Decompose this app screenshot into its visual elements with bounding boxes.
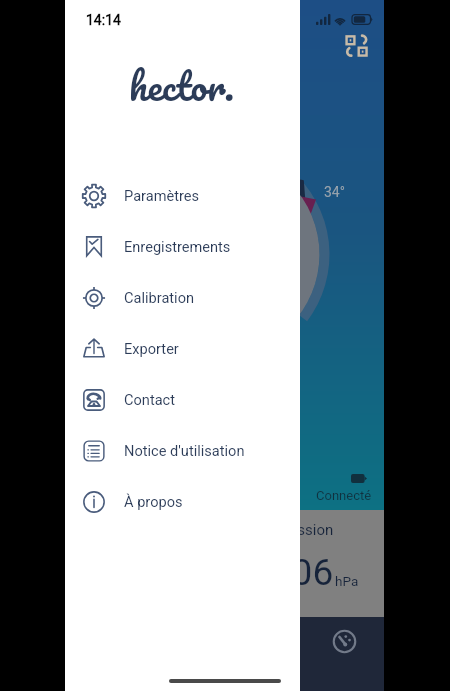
staticText: Signal: [166, 488, 202, 503]
staticText: Calibration: [124, 289, 195, 306]
button[interactable]: Paramètres: [65, 170, 300, 221]
staticText: Batterie: [82, 488, 128, 503]
button[interactable]: Notice d'utilisation: [65, 425, 300, 476]
staticText: Enregistrements: [124, 238, 231, 255]
staticText: Paramètres: [124, 187, 200, 204]
staticText: 1006: [250, 551, 334, 594]
button[interactable]: Historique: [144, 617, 224, 691]
button[interactable]: Alertes: [224, 617, 304, 691]
staticText: Exporter: [124, 340, 179, 357]
button[interactable]: Synchroniser: [344, 33, 371, 60]
staticText: Notice d'utilisation: [124, 442, 245, 459]
button[interactable]: Enregistrements: [65, 221, 300, 272]
staticText: 14:14: [86, 12, 121, 28]
staticText: Contact: [124, 391, 176, 408]
button[interactable]: Mesures: [304, 617, 384, 691]
staticText: 34°: [324, 184, 345, 200]
staticText: hector.: [129, 53, 235, 118]
staticText: À propos: [124, 493, 183, 510]
staticText: Pression: [275, 521, 334, 539]
button[interactable]: À propos: [65, 476, 300, 527]
staticText: hPa: [335, 573, 359, 589]
button[interactable]: Calibration: [65, 272, 300, 323]
staticText: Connecté: [316, 488, 372, 503]
button[interactable]: Exporter: [65, 323, 300, 374]
button[interactable]: Contact: [65, 374, 300, 425]
